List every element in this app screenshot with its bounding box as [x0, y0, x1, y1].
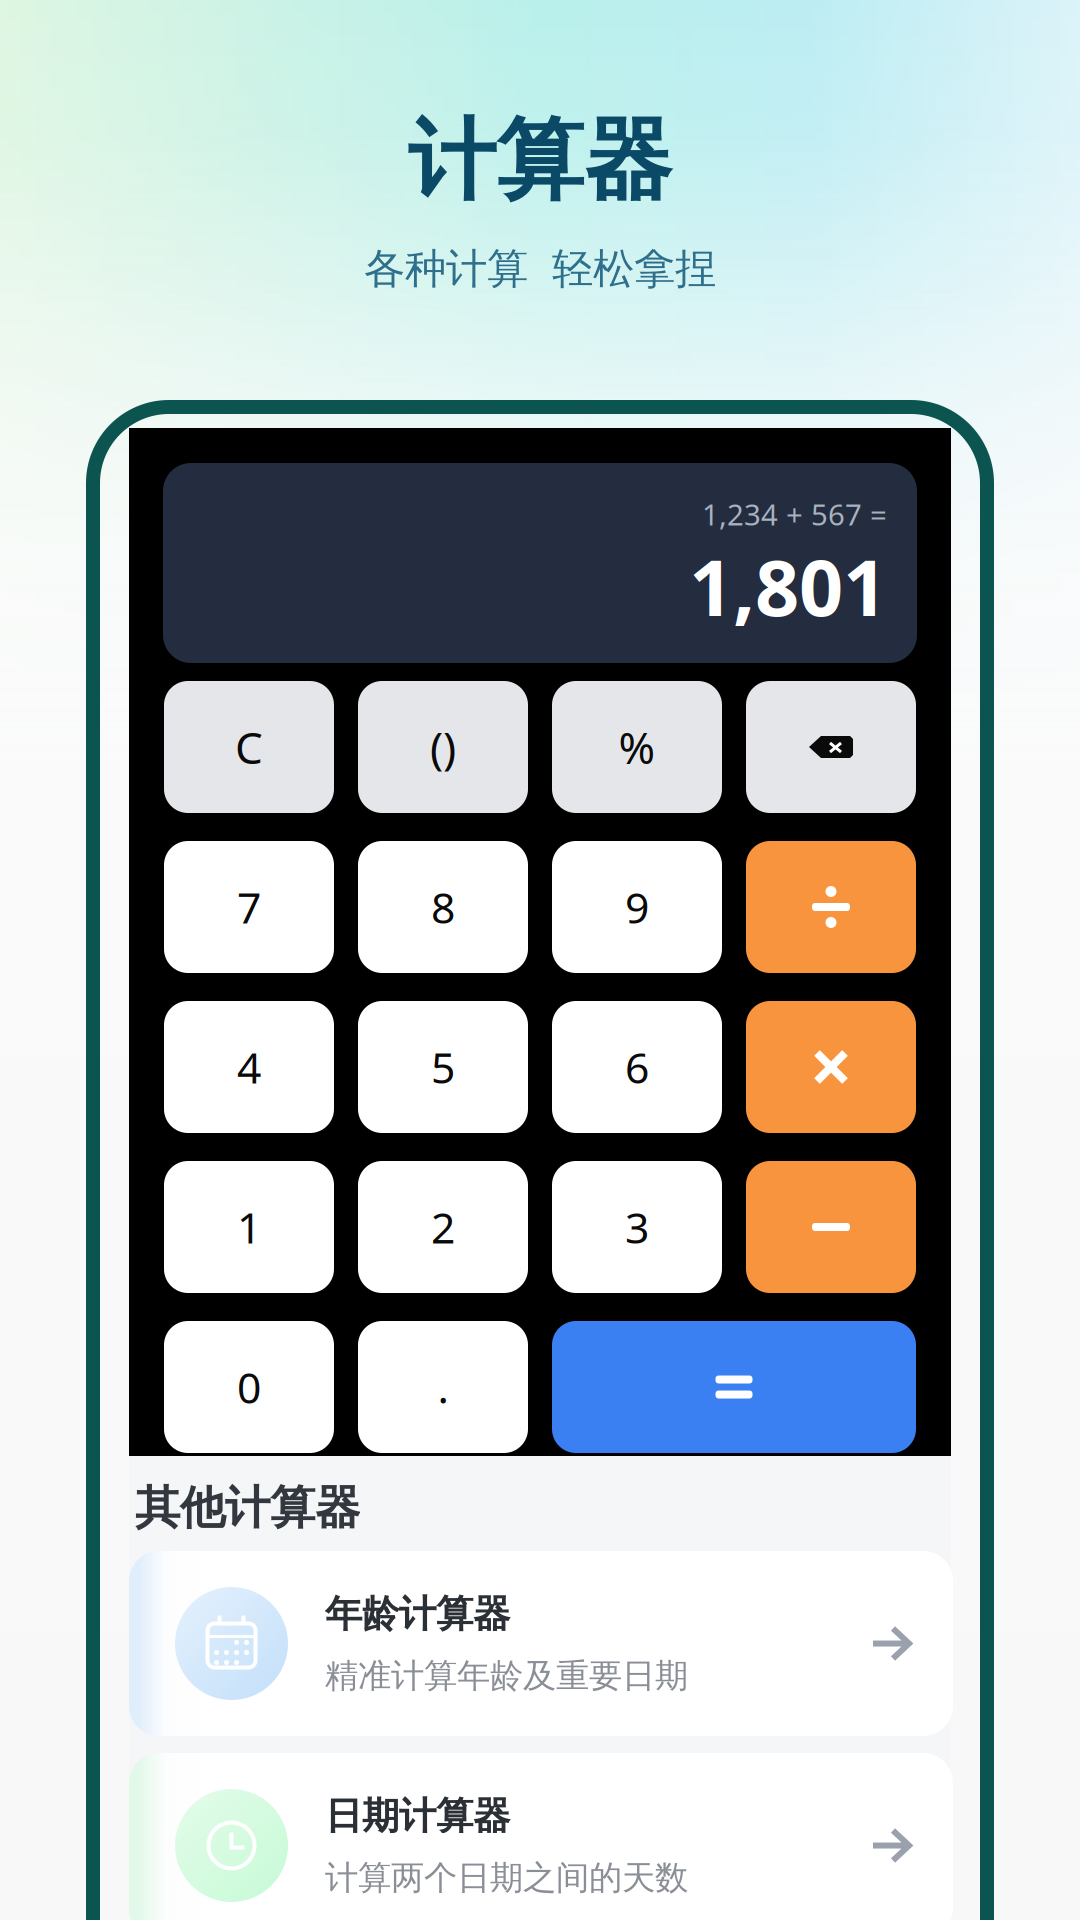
- button[interactable]: 1: [164, 1161, 334, 1293]
- staticText: 8: [431, 879, 455, 935]
- button[interactable]: 5: [358, 1001, 528, 1133]
- button[interactable]: Multiply: [746, 1001, 916, 1133]
- staticText: 2: [431, 1199, 455, 1255]
- button[interactable]: 2: [358, 1161, 528, 1293]
- staticText: 年龄计算器: [325, 1591, 510, 1637]
- button[interactable]: 日期计算器: [129, 1753, 953, 1920]
- button[interactable]: 6: [552, 1001, 722, 1133]
- staticText: 1: [237, 1199, 261, 1255]
- button[interactable]: (): [358, 681, 528, 813]
- staticText: .: [437, 1359, 448, 1415]
- staticText: 7: [237, 879, 261, 935]
- button[interactable]: Backspace: [746, 681, 916, 813]
- staticText: 计算两个日期之间的天数: [325, 1857, 688, 1898]
- staticText: 3: [625, 1199, 649, 1255]
- button[interactable]: .: [358, 1321, 528, 1453]
- button[interactable]: 0: [164, 1321, 334, 1453]
- button[interactable]: 年龄计算器: [129, 1551, 953, 1736]
- staticText: 1,801: [689, 535, 887, 637]
- staticText: 日期计算器: [325, 1793, 510, 1839]
- button[interactable]: 9: [552, 841, 722, 973]
- staticText: 计算器: [408, 107, 672, 215]
- staticText: %: [618, 718, 655, 776]
- staticText: 9: [625, 879, 649, 935]
- button[interactable]: Subtract: [746, 1161, 916, 1293]
- button[interactable]: Equals: [552, 1321, 916, 1453]
- staticText: 5: [431, 1039, 455, 1095]
- staticText: C: [235, 718, 263, 776]
- button[interactable]: 8: [358, 841, 528, 973]
- staticText: 4: [237, 1039, 261, 1095]
- button[interactable]: Divide: [746, 841, 916, 973]
- button[interactable]: 7: [164, 841, 334, 973]
- button[interactable]: C: [164, 681, 334, 813]
- staticText: 其他计算器: [135, 1480, 360, 1536]
- staticText: 0: [237, 1359, 261, 1415]
- staticText: 精准计算年龄及重要日期: [325, 1655, 688, 1696]
- staticText: (): [430, 718, 456, 776]
- staticText: 6: [625, 1039, 649, 1095]
- button[interactable]: 3: [552, 1161, 722, 1293]
- button[interactable]: 4: [164, 1001, 334, 1133]
- button[interactable]: %: [552, 681, 722, 813]
- staticText: 1,234 + 567 =: [702, 494, 887, 533]
- staticText: 各种计算 轻松拿捏: [364, 244, 716, 294]
